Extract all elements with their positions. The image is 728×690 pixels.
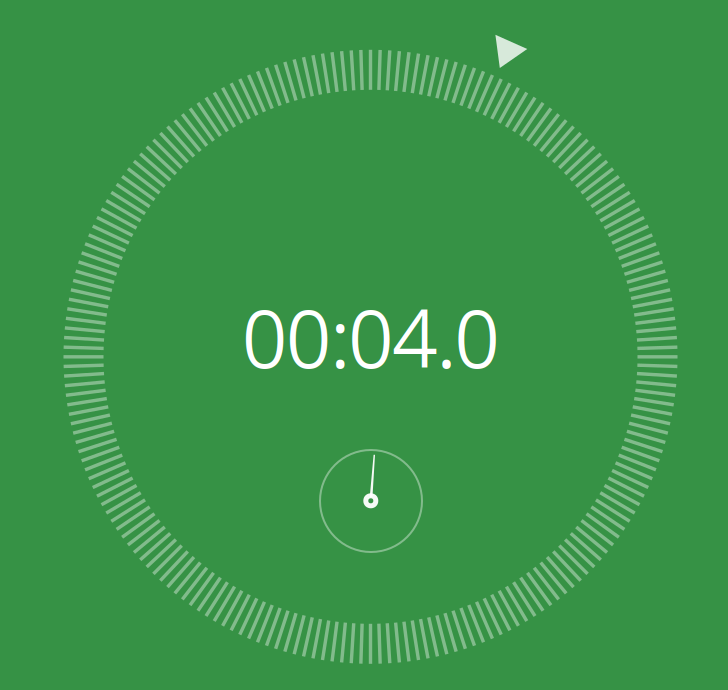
button[interactable]: Stopwatch, 00:04.0 <box>0 0 728 690</box>
staticText: 00:04.0 <box>242 282 500 391</box>
